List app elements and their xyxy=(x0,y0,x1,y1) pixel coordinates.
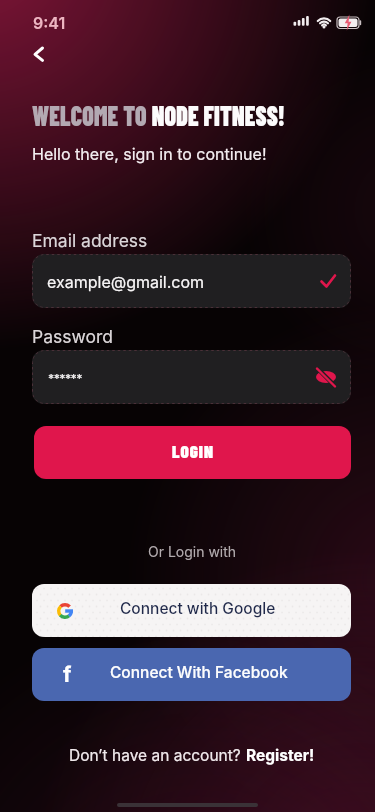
staticText: example@gmail.com xyxy=(47,272,205,291)
button[interactable]: example@gmail.com xyxy=(32,254,351,308)
staticText: Connect With Facebook xyxy=(110,663,288,682)
button[interactable]: Register! xyxy=(246,746,315,765)
staticText: Hello there, sign in to continue! xyxy=(32,144,267,163)
staticText: NODE FITNESS! xyxy=(152,98,285,128)
button[interactable]: Connect with Google xyxy=(32,584,351,637)
staticText: Register! xyxy=(246,746,315,765)
staticText: WELCOME TO xyxy=(32,98,152,128)
button[interactable]: ****** xyxy=(32,350,351,404)
staticText: Or Login with xyxy=(148,543,237,560)
staticText: LOGIN xyxy=(172,441,214,461)
staticText: 9:41 xyxy=(33,13,66,32)
staticText: Connect with Google xyxy=(120,599,276,618)
button[interactable]: LOGIN xyxy=(34,426,351,479)
staticText: Password xyxy=(32,326,113,347)
button[interactable]: f xyxy=(32,648,351,701)
staticText: f xyxy=(63,662,72,687)
staticText: Email address xyxy=(32,230,148,251)
button[interactable] xyxy=(24,40,54,68)
staticText: Don’t have an account? xyxy=(69,746,246,765)
staticText: ****** xyxy=(48,371,82,386)
